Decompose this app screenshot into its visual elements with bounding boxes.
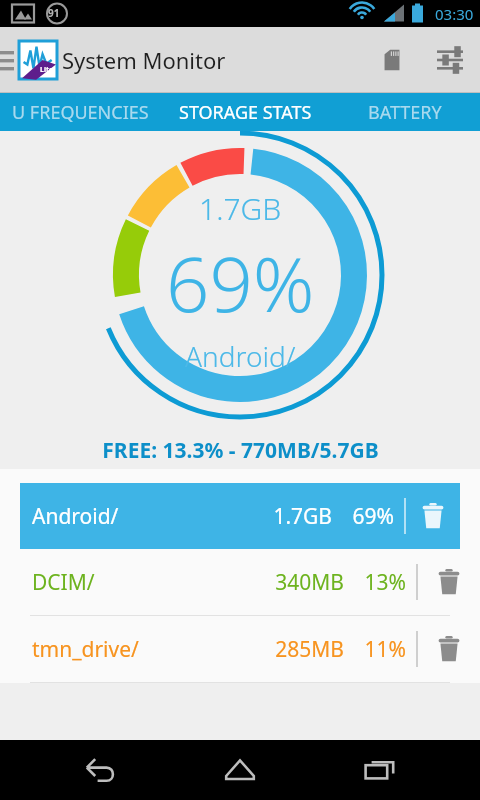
staticText: STORAGE STATS <box>179 100 312 125</box>
button[interactable]: Open navigation menu <box>0 40 20 80</box>
button[interactable]: Home <box>200 740 280 800</box>
button[interactable]: Settings <box>420 32 480 88</box>
staticText: 13% <box>358 568 406 597</box>
staticText: 340MB <box>258 568 344 597</box>
staticText: Lite <box>40 65 54 75</box>
staticText: 69% <box>346 502 394 531</box>
staticText: 69% <box>166 231 315 335</box>
staticText: U FREQUENCIES <box>12 100 149 125</box>
staticText: BATTERY <box>368 100 442 125</box>
button[interactable]: Back <box>60 740 140 800</box>
staticText: 285MB <box>258 635 344 664</box>
staticText: DCIM/ <box>32 568 258 597</box>
button[interactable]: U FREQUENCIES <box>0 93 160 131</box>
button[interactable]: tmn_drive/ <box>0 616 480 682</box>
staticText: FREE: 13.3% - 770MB/5.7GB <box>102 436 379 465</box>
button[interactable]: DCIM/ <box>0 549 480 615</box>
staticText: System Monitor <box>62 45 226 75</box>
button[interactable]: SD card storage <box>364 32 420 88</box>
staticText: 03:30 <box>435 4 474 24</box>
button[interactable]: Delete Android/ <box>406 483 460 549</box>
button[interactable]: BATTERY <box>330 93 480 131</box>
button[interactable]: Delete DCIM/ <box>418 549 480 615</box>
button[interactable]: Delete tmn_drive/ <box>418 616 480 682</box>
staticText: tmn_drive/ <box>32 635 258 664</box>
staticText: Android/ <box>32 502 246 531</box>
staticText: 1.7GB <box>199 188 282 229</box>
button[interactable]: Recent apps <box>340 740 420 800</box>
staticText: 1.7GB <box>246 502 332 531</box>
button[interactable]: Android/ <box>20 483 460 549</box>
staticText: 91 <box>48 6 60 20</box>
button[interactable]: STORAGE STATS <box>160 93 330 131</box>
staticText: Android/ <box>185 337 296 375</box>
staticText: 11% <box>358 635 406 664</box>
